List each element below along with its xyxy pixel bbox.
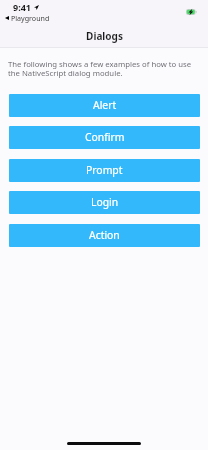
staticText: Playground bbox=[11, 13, 50, 23]
staticText: Dialogs bbox=[86, 29, 123, 43]
staticText: The following shows a few examples of ho… bbox=[8, 59, 198, 78]
staticText: Confirm bbox=[85, 130, 125, 144]
staticText: Alert bbox=[93, 98, 117, 112]
button[interactable]: Action bbox=[9, 224, 200, 247]
button[interactable]: Playground bbox=[5, 13, 50, 23]
button[interactable]: Confirm bbox=[9, 126, 200, 149]
button[interactable]: Prompt bbox=[9, 159, 200, 182]
staticText: Action bbox=[89, 228, 120, 242]
staticText: Login bbox=[91, 195, 119, 209]
button[interactable]: Login bbox=[9, 191, 200, 214]
button[interactable]: Alert bbox=[9, 94, 200, 117]
staticText: Prompt bbox=[86, 163, 123, 177]
other: Battery charging bbox=[186, 9, 197, 15]
staticText: 9:41 bbox=[13, 1, 31, 13]
